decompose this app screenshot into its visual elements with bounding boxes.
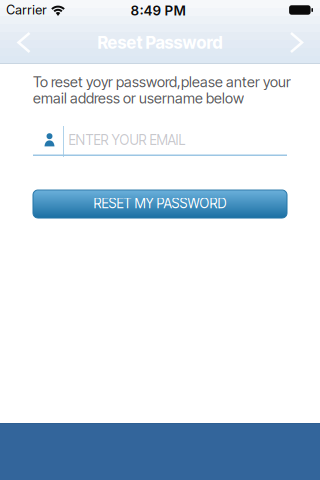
button[interactable]: Forward — [279, 21, 314, 64]
button[interactable]: Enter your email — [33, 122, 287, 158]
staticText: 8:49 PM — [130, 2, 185, 19]
staticText: ENTER YOUR EMAIL — [68, 132, 185, 148]
button[interactable]: RESET MY PASSWORD — [33, 190, 287, 218]
staticText: Carrier — [6, 2, 47, 18]
staticText: To reset yoyr password,please anter your… — [33, 74, 291, 106]
staticText: RESET MY PASSWORD — [93, 195, 226, 212]
button[interactable]: Back — [6, 21, 41, 64]
staticText: Reset Password — [97, 32, 222, 53]
